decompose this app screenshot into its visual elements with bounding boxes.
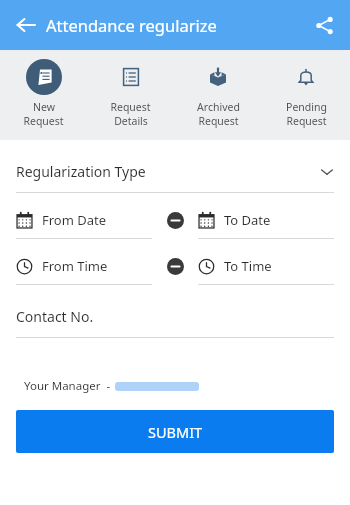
- staticText: Archived: [197, 100, 240, 114]
- staticText: Regularization Type: [16, 162, 320, 181]
- staticText: New: [33, 100, 55, 114]
- staticText: Request: [23, 114, 64, 128]
- button[interactable]: Pending: [262, 50, 350, 128]
- staticText: Pending: [286, 100, 327, 114]
- button[interactable]: From Date: [16, 211, 152, 239]
- staticText: To Date: [224, 211, 271, 229]
- button[interactable]: Back: [9, 8, 43, 42]
- staticText: Request: [110, 100, 151, 114]
- button[interactable]: SUBMIT: [16, 410, 334, 453]
- button[interactable]: Share: [308, 9, 340, 41]
- staticText: To Time: [224, 257, 272, 275]
- staticText: Contact No.: [16, 307, 94, 326]
- button[interactable]: To Date: [198, 211, 334, 239]
- staticText: Attendance regularize: [46, 14, 217, 36]
- staticText: Request: [198, 114, 239, 128]
- staticText: Request: [286, 114, 327, 128]
- staticText: Details: [114, 114, 148, 128]
- button[interactable]: From Time: [16, 257, 152, 285]
- button[interactable]: Request: [87, 50, 174, 128]
- staticText: SUBMIT: [148, 422, 203, 442]
- button[interactable]: New: [0, 50, 87, 128]
- button[interactable]: Contact No.: [16, 307, 334, 338]
- button[interactable]: Regularization Type: [16, 162, 334, 193]
- button[interactable]: To Time: [198, 257, 334, 285]
- staticText: From Date: [42, 211, 107, 229]
- button[interactable]: Archived: [174, 50, 262, 128]
- staticText: From Time: [42, 257, 108, 275]
- staticText: Your Manager -: [24, 378, 111, 394]
